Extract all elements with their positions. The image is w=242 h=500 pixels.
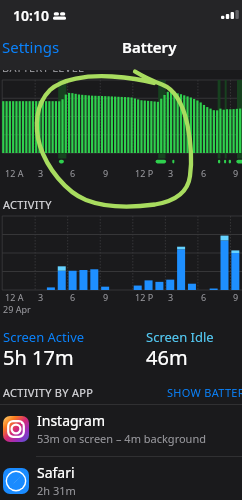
staticText: 3 xyxy=(38,167,44,179)
staticText: 29 Apr xyxy=(3,303,31,315)
staticText: 9 xyxy=(233,167,239,179)
staticText: 3 xyxy=(168,291,174,303)
button[interactable]: Safari xyxy=(0,457,242,500)
staticText: Settings xyxy=(2,37,60,57)
staticText: 53m on screen – 4m background xyxy=(37,431,206,446)
staticText: 12 P xyxy=(135,167,154,179)
staticText: 12 A xyxy=(5,291,24,303)
button[interactable]: Instagram xyxy=(0,405,242,452)
staticText: 10:10 xyxy=(13,6,49,25)
staticText: 6 xyxy=(70,291,76,303)
staticText: 46m xyxy=(146,344,188,371)
staticText: SHOW BATTERY USAGE xyxy=(167,385,242,400)
button[interactable]: Settings xyxy=(2,37,60,57)
staticText: 12 P xyxy=(135,291,154,303)
staticText: Screen Active xyxy=(3,328,85,346)
staticText: 6 xyxy=(201,291,207,303)
staticText: Instagram xyxy=(37,411,106,430)
staticText: Screen Idle xyxy=(146,328,214,346)
staticText: 9 xyxy=(233,291,239,303)
staticText: ACTIVITY BY APP xyxy=(3,385,94,400)
button[interactable]: SHOW BATTERY USAGE xyxy=(167,385,242,400)
staticText: 3 xyxy=(38,291,44,303)
staticText: 6 xyxy=(201,167,207,179)
staticText: 12 A xyxy=(5,167,24,179)
staticText: BATTERY LEVEL xyxy=(2,60,85,75)
staticText: 3 xyxy=(168,167,174,179)
staticText: Battery xyxy=(122,37,177,57)
staticText: 6 xyxy=(70,167,76,179)
staticText: 2h 31m xyxy=(37,483,76,498)
staticText: Safari xyxy=(37,463,75,482)
staticText: 9 xyxy=(103,167,109,179)
other: Cellular signal xyxy=(221,10,240,21)
staticText: ACTIVITY xyxy=(3,197,52,212)
staticText: 9 xyxy=(103,291,109,303)
other: Sleep focus xyxy=(53,11,66,21)
staticText: 5h 17m xyxy=(3,344,74,371)
